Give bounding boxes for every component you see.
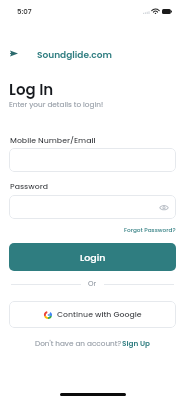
button[interactable]: Login bbox=[9, 243, 176, 271]
button[interactable]: Sign Up bbox=[122, 338, 151, 348]
staticText: Log In bbox=[9, 79, 54, 100]
staticText: Password bbox=[10, 181, 48, 192]
button[interactable]: Show password bbox=[9, 195, 176, 219]
button[interactable]: Forgot Password? bbox=[124, 226, 176, 234]
staticText: Soundglide.com bbox=[37, 49, 112, 62]
button[interactable] bbox=[9, 148, 176, 172]
staticText: Don't have an account? bbox=[35, 338, 122, 348]
button[interactable]: Show password bbox=[158, 201, 170, 213]
staticText: 5:07 bbox=[17, 7, 32, 17]
staticText: Or bbox=[88, 279, 97, 289]
staticText: Login bbox=[80, 251, 106, 264]
staticText: Enter your details to login! bbox=[9, 99, 104, 109]
button[interactable]: Continue with Google bbox=[9, 301, 176, 328]
staticText: Continue with Google bbox=[57, 309, 142, 320]
staticText: Mobile Number/Email bbox=[10, 135, 96, 146]
